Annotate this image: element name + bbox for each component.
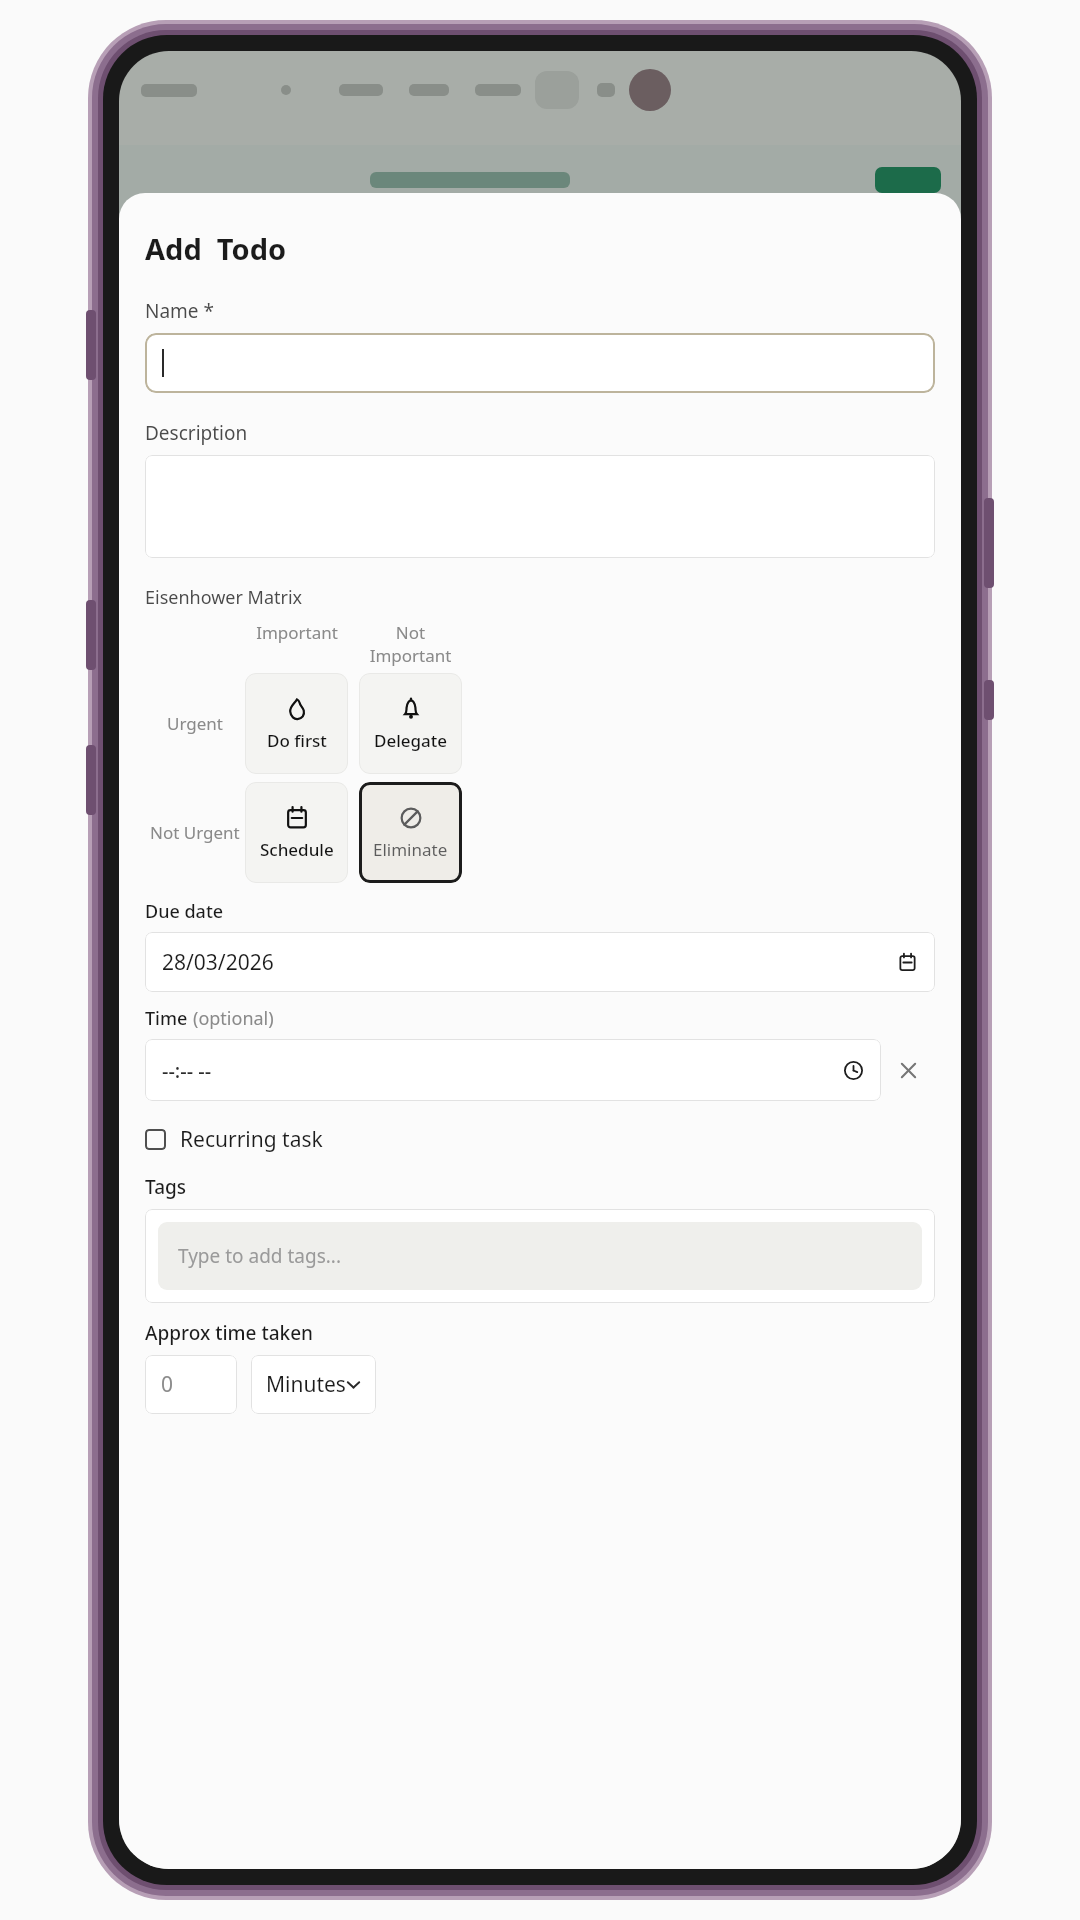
button[interactable]: Do first	[245, 673, 348, 774]
staticText: Description	[145, 420, 248, 446]
other: Pick time	[843, 1060, 864, 1081]
staticText: Delegate	[374, 729, 448, 752]
button[interactable]: Clear time	[881, 1039, 935, 1101]
staticText: --:-- --	[162, 1057, 212, 1084]
button[interactable]: 0	[145, 1355, 237, 1414]
button[interactable]: 28/03/2026	[145, 932, 935, 992]
staticText: Due date	[145, 899, 224, 924]
button[interactable]: --:-- --	[145, 1039, 881, 1101]
staticText: 28/03/2026	[162, 948, 274, 977]
staticText: Not Important	[359, 621, 462, 667]
button[interactable]	[145, 333, 935, 393]
staticText: Name *	[145, 298, 214, 324]
staticText: Important	[256, 621, 338, 644]
button[interactable]: Eliminate	[359, 782, 462, 883]
staticText: Schedule	[260, 838, 334, 861]
staticText: Eisenhower Matrix	[145, 585, 303, 610]
button[interactable]: Minutes	[251, 1355, 376, 1414]
button[interactable]: Type to add tags...	[158, 1222, 922, 1290]
staticText: Not Urgent	[150, 821, 240, 844]
button[interactable]: Schedule	[245, 782, 348, 883]
button[interactable]: Recurring task	[145, 1121, 323, 1158]
staticText: Type to add tags...	[178, 1243, 342, 1269]
staticText: Urgent	[167, 712, 223, 735]
staticText: Do first	[267, 729, 327, 752]
staticText: (optional)	[193, 1006, 274, 1031]
button[interactable]: Delegate	[359, 673, 462, 774]
staticText: Time	[145, 1006, 193, 1031]
staticText: Add Todo	[145, 229, 287, 268]
staticText: Minutes	[266, 1370, 346, 1399]
staticText: 0	[161, 1370, 174, 1399]
other: Pick date	[897, 952, 918, 973]
staticText: Recurring task	[180, 1125, 323, 1154]
staticText: Tags	[145, 1174, 187, 1200]
staticText: Eliminate	[373, 838, 448, 861]
button[interactable]	[145, 455, 935, 558]
staticText: Approx time taken	[145, 1320, 313, 1346]
